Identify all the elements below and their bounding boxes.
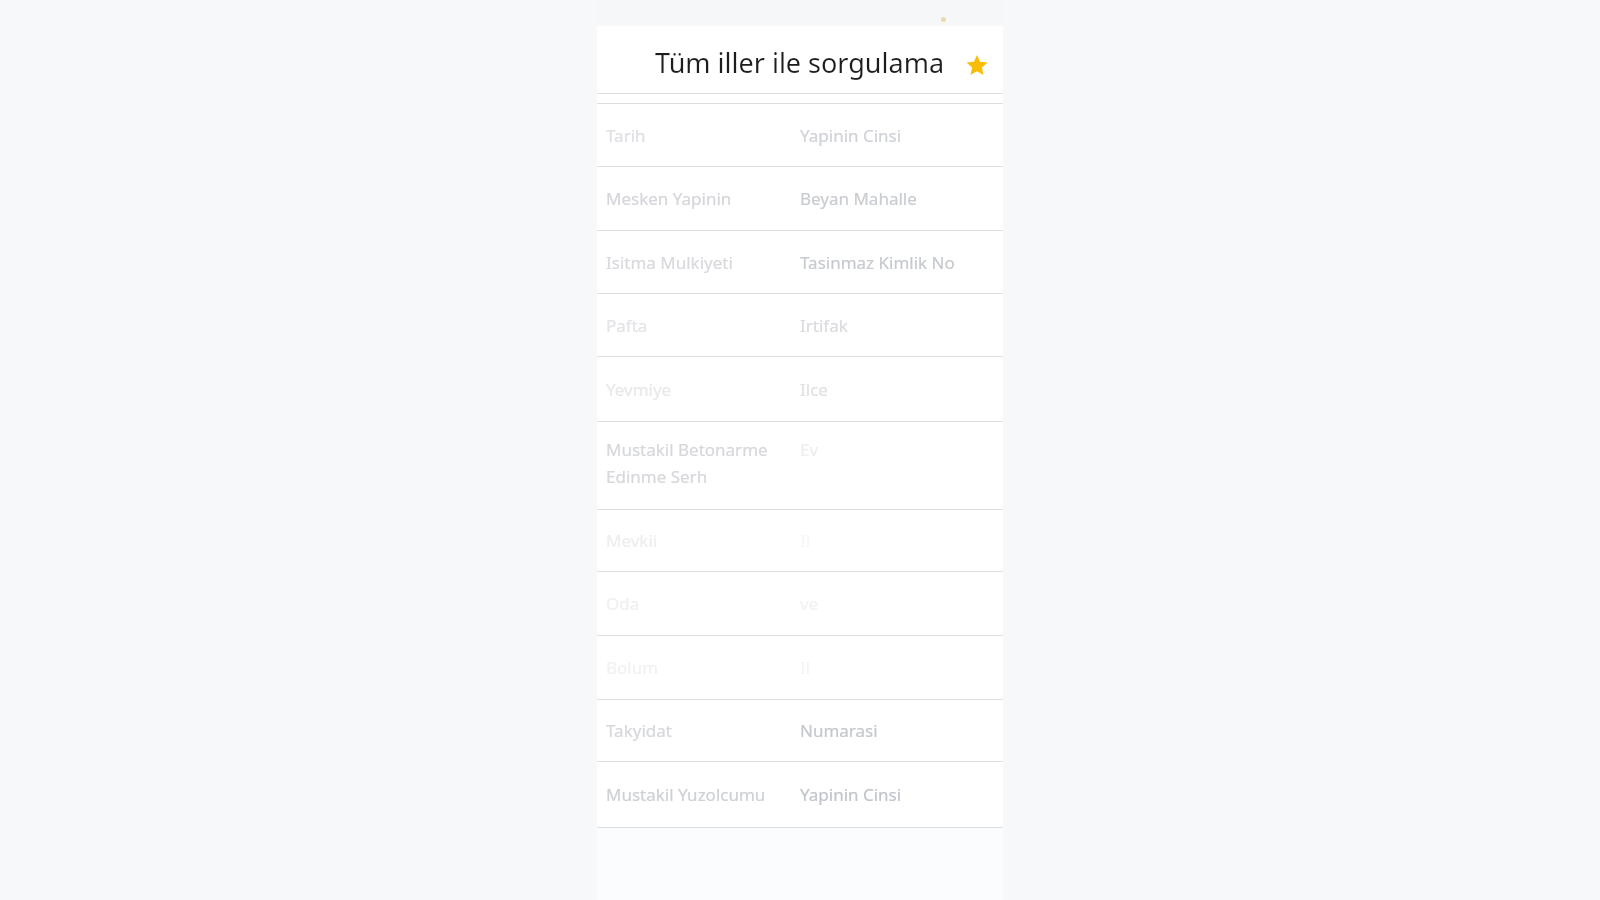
staticText: Numarasi: [800, 719, 878, 742]
staticText: Tasinmaz Kimlik No: [800, 251, 955, 274]
button[interactable]: Tarih: [597, 104, 1003, 166]
staticText: Irtifak: [800, 314, 848, 337]
button[interactable]: Mustakil Yuzolcumu: [597, 762, 1003, 827]
button[interactable]: Mesken Yapinin: [597, 167, 1003, 230]
staticText: Takyidat: [606, 719, 800, 742]
button[interactable]: Isitma Mulkiyeti: [597, 231, 1003, 293]
staticText: Mevkii: [606, 529, 800, 552]
staticText: Mustakil Betonarme: [606, 438, 768, 461]
staticText: Ev: [800, 438, 819, 461]
staticText: Yapinin Cinsi: [800, 783, 902, 806]
button[interactable]: Favorilere ekle: [956, 45, 998, 87]
staticText: Beyan Mahalle: [800, 187, 917, 210]
button[interactable]: Mustakil Betonarme: [597, 422, 1003, 509]
staticText: ve: [800, 592, 819, 615]
staticText: Yevmiye: [606, 378, 800, 401]
button[interactable]: Tüm iller ile sorgulama: [597, 26, 1003, 93]
staticText: Pafta: [606, 314, 800, 337]
staticText: Tüm iller ile sorgulama: [655, 44, 945, 81]
button[interactable]: Pafta: [597, 294, 1003, 356]
button[interactable]: Takyidat: [597, 700, 1003, 761]
staticText: Il: [800, 529, 811, 552]
staticText: Tarih: [606, 124, 800, 147]
staticText: Edinme Serh: [606, 465, 708, 488]
staticText: Yapinin Cinsi: [800, 124, 902, 147]
staticText: Il: [800, 656, 811, 679]
staticText: Ilce: [800, 378, 828, 401]
staticText: Mustakil Yuzolcumu: [606, 783, 800, 806]
staticText: Mesken Yapinin: [606, 187, 800, 210]
staticText: Isitma Mulkiyeti: [606, 251, 800, 274]
